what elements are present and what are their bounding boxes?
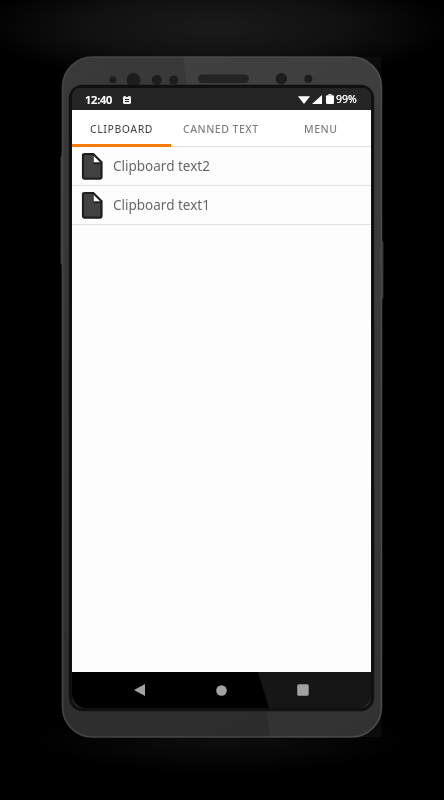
button[interactable]: MENU xyxy=(271,110,371,147)
staticText: CLIPBOARD xyxy=(90,122,153,136)
button[interactable]: Clipboard text2 xyxy=(72,147,371,186)
staticText: CANNED TEXT xyxy=(183,122,259,136)
staticText: MENU xyxy=(304,122,338,136)
staticText: Clipboard text1 xyxy=(113,196,210,214)
button[interactable] xyxy=(289,676,317,704)
button[interactable] xyxy=(207,676,235,704)
staticText: Clipboard text2 xyxy=(113,157,210,175)
button[interactable]: CANNED TEXT xyxy=(171,110,271,147)
staticText: 99% xyxy=(336,92,357,106)
button[interactable] xyxy=(125,676,153,704)
button[interactable]: CLIPBOARD xyxy=(72,110,171,147)
button[interactable]: Clipboard text1 xyxy=(72,186,371,225)
staticText: 12:40 xyxy=(85,92,113,107)
